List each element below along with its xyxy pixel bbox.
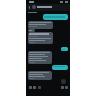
- button[interactable]: Camera: [38, 86, 41, 89]
- button[interactable]: Contact avatar: [32, 5, 36, 9]
- button[interactable]: Attach: [33, 86, 36, 89]
- button[interactable]: Send: [65, 86, 68, 89]
- button[interactable]: Back: [27, 5, 32, 10]
- button[interactable]: Microphone: [61, 86, 64, 89]
- button[interactable]: Scroll to bottom: [61, 79, 66, 84]
- button[interactable]: Emoji: [29, 86, 32, 89]
